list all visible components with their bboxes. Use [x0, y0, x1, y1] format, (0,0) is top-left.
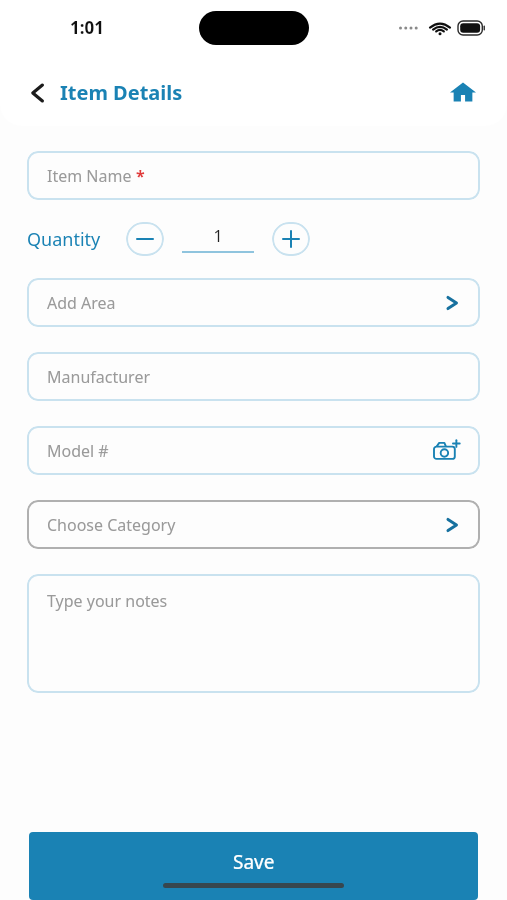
staticText: 1	[182, 225, 254, 247]
button[interactable]: Increase	[272, 222, 310, 256]
staticText: Model #	[47, 440, 109, 462]
button[interactable]: Decrease	[126, 222, 164, 256]
other: Add photo	[434, 440, 460, 462]
staticText: Quantity	[27, 227, 101, 252]
staticText: Manufacturer	[47, 366, 151, 388]
staticText: Item Name	[47, 165, 136, 187]
button[interactable]: Add Area	[27, 278, 480, 327]
staticText: Choose Category	[47, 514, 176, 536]
button[interactable]: Item Name	[27, 151, 480, 200]
button[interactable]: Type your notes	[27, 574, 480, 693]
button[interactable]: Home	[445, 74, 481, 110]
button[interactable]: Save	[29, 832, 478, 900]
other: Open	[444, 293, 460, 313]
button[interactable]: Manufacturer	[27, 352, 480, 401]
staticText: Save	[233, 849, 275, 875]
staticText: Add Area	[47, 292, 116, 314]
staticText: Item Details	[60, 79, 183, 106]
button[interactable]: Back	[28, 79, 183, 106]
button[interactable]: Model #	[27, 426, 480, 475]
other: Open	[444, 515, 460, 535]
staticText: 1:01	[70, 16, 104, 39]
staticText: *	[136, 165, 145, 187]
other: Back	[28, 81, 48, 105]
staticText: Type your notes	[47, 590, 168, 612]
button[interactable]: Choose Category	[27, 500, 480, 549]
